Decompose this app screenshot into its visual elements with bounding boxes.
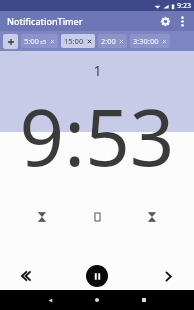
button[interactable]: Settings [156, 12, 174, 30]
button[interactable]: Timer mode [29, 204, 55, 230]
button[interactable]: Next [154, 262, 182, 290]
button[interactable]: More options [174, 13, 190, 29]
button[interactable]: 5:00 [21, 34, 58, 48]
staticText: 9:53 [0, 83, 194, 189]
button[interactable]: Vibration [139, 204, 165, 230]
button[interactable]: Home [89, 292, 105, 308]
button[interactable]: 15:00 [61, 34, 95, 48]
staticText: 2:00 [101, 36, 116, 46]
staticText: x5 [40, 38, 47, 45]
button[interactable]: Previous [10, 262, 40, 290]
staticText: 5:00 [24, 36, 39, 46]
button[interactable]: Screen wake [84, 204, 110, 230]
staticText: 1 [93, 60, 102, 80]
staticText: 9:23 [177, 1, 191, 11]
button[interactable]: Back [42, 292, 58, 308]
button[interactable]: Recents [136, 292, 152, 308]
button[interactable]: 3:30:00 [130, 34, 170, 48]
staticText: 3:30:00 [133, 36, 159, 46]
staticText: NotificationTimer [7, 15, 83, 27]
button[interactable]: 2:00 [98, 34, 127, 48]
button[interactable]: Add timer [3, 34, 18, 49]
staticText: 15:00 [64, 36, 84, 46]
button[interactable]: Pause [86, 265, 108, 287]
